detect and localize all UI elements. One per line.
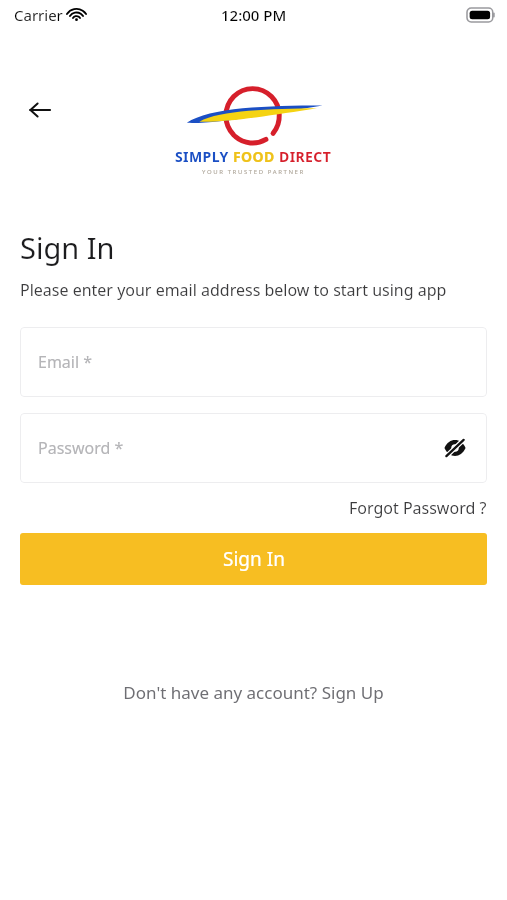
staticText: 12:00 PM xyxy=(221,5,287,25)
button[interactable]: Back xyxy=(20,90,60,130)
staticText: FOOD xyxy=(233,147,275,166)
staticText: SIMPLY xyxy=(175,147,229,166)
staticText: Password * xyxy=(38,437,124,459)
staticText: Sign In xyxy=(223,546,285,572)
staticText: Carrier xyxy=(14,5,63,25)
staticText: DIRECT xyxy=(279,147,332,166)
button[interactable]: Forgot Password ? xyxy=(349,497,487,519)
staticText: Sign In xyxy=(20,228,115,267)
button[interactable]: Sign In xyxy=(20,533,487,585)
button[interactable]: Password * xyxy=(20,413,487,483)
button[interactable]: Email * xyxy=(20,327,487,397)
staticText: Forgot Password ? xyxy=(349,497,487,519)
staticText: YOUR TRUSTED PARTNER xyxy=(202,168,305,176)
button[interactable]: Don't have any account? Sign Up xyxy=(117,675,390,710)
button[interactable]: Show password xyxy=(441,434,469,462)
staticText: Please enter your email address below to… xyxy=(20,279,447,301)
staticText: Don't have any account? Sign Up xyxy=(123,681,384,704)
staticText: Email * xyxy=(38,351,93,373)
